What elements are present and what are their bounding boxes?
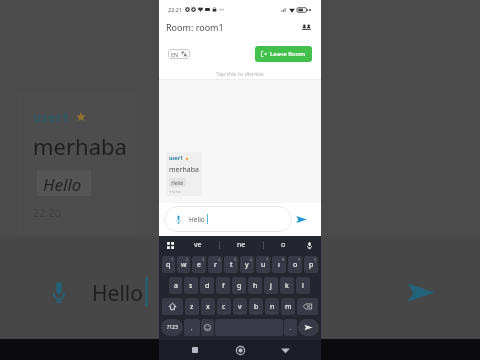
staticText: user1 [33,108,69,126]
staticText: 3 [202,257,205,262]
button[interactable]: Emoji [201,319,214,336]
button[interactable]: Voice input [303,239,316,252]
staticText: Hello [171,179,184,186]
button[interactable]: w [177,256,190,273]
staticText: 6 [250,257,253,262]
button[interactable]: m [281,298,295,315]
staticText: 0 [314,257,317,262]
staticText: 7 [266,257,269,262]
staticText: k [285,281,289,291]
staticText: 5 [234,257,237,262]
staticText: h [253,281,258,291]
button[interactable]: Leave Room [255,46,312,62]
staticText: 22:21 [168,6,183,13]
staticText: m [285,302,292,312]
button[interactable]: b [249,298,263,315]
button[interactable]: Hide keyboard [276,341,294,359]
button[interactable]: g [232,277,246,294]
staticText: 1 [171,257,174,262]
button[interactable]: Send [293,211,309,227]
staticText: s [189,281,193,291]
staticText: ••• [219,7,225,13]
staticText: Hello [189,215,205,224]
button[interactable]: Recent apps [186,341,204,359]
button[interactable]: user1 [166,152,202,196]
staticText: d [205,281,210,291]
staticText: ne [237,240,246,250]
staticText: 4 [218,257,221,262]
button[interactable]: c [217,298,231,315]
staticText: g [237,281,242,291]
staticText: c [222,302,226,312]
button[interactable]: p [304,256,318,273]
staticText: l [302,281,304,291]
staticText: merhaba [169,165,199,175]
staticText: o [293,260,298,270]
button[interactable]: r [208,256,222,273]
staticText: ı [278,260,280,270]
button[interactable]: ?123 [161,319,183,336]
staticText: Hello [43,173,82,196]
button[interactable]: v [233,298,247,315]
staticText: Leave Room [270,50,306,58]
staticText: user1 [169,155,183,162]
button[interactable]: k [280,277,294,294]
button[interactable]: Hello [164,206,292,232]
staticText: merhaba [33,131,127,161]
staticText: e [197,260,201,270]
staticText: w [181,260,187,270]
button[interactable]: Shift [162,298,183,315]
button[interactable]: a [169,277,182,294]
staticText: , [191,324,193,332]
staticText: f [222,281,225,291]
staticText: u [261,260,266,270]
button[interactable]: Keyboard menu [164,239,177,252]
staticText: o [281,240,286,250]
staticText: 8 [282,257,285,262]
button[interactable]: h [248,277,262,294]
staticText: a [174,281,178,291]
button[interactable]: y [240,256,254,273]
button[interactable]: e [192,256,206,273]
staticText: r [214,260,217,270]
button[interactable]: EN [168,49,190,59]
staticText: y [245,260,249,270]
staticText: q [166,260,171,270]
button[interactable]: Participants [299,20,313,34]
staticText: ve [194,240,202,250]
button[interactable]: d [200,277,214,294]
staticText: 2 [186,257,189,262]
button[interactable]: ı [272,256,286,273]
button[interactable]: j [264,277,278,294]
button[interactable]: f [216,277,230,294]
staticText: Room: room1 [166,21,224,33]
staticText: . [290,324,292,332]
button[interactable]: x [201,298,215,315]
button[interactable]: t [224,256,238,273]
staticText: j [270,281,272,291]
staticText: Hello [92,279,143,308]
button[interactable]: n [265,298,279,315]
button[interactable]: l [296,277,310,294]
button[interactable]: q [162,256,175,273]
button[interactable]: , [184,319,200,336]
staticText: t [230,260,233,270]
button[interactable]: . [284,319,297,336]
staticText: 22:20 [33,205,62,220]
staticText: n [270,302,275,312]
staticText: b [254,302,259,312]
button[interactable]: o [288,256,302,273]
button[interactable]: s [184,277,198,294]
button[interactable]: z [185,298,199,315]
staticText: v [238,302,242,312]
staticText: p [309,260,314,270]
staticText: Tap this to dismiss [216,70,264,77]
button[interactable]: Send message [298,319,319,336]
button[interactable]: u [256,256,270,273]
staticText: 22:20 [169,190,181,193]
staticText: x [206,302,210,312]
button[interactable]: Backspace [297,298,318,315]
staticText: 9 [298,257,301,262]
button[interactable]: Home [231,341,249,359]
